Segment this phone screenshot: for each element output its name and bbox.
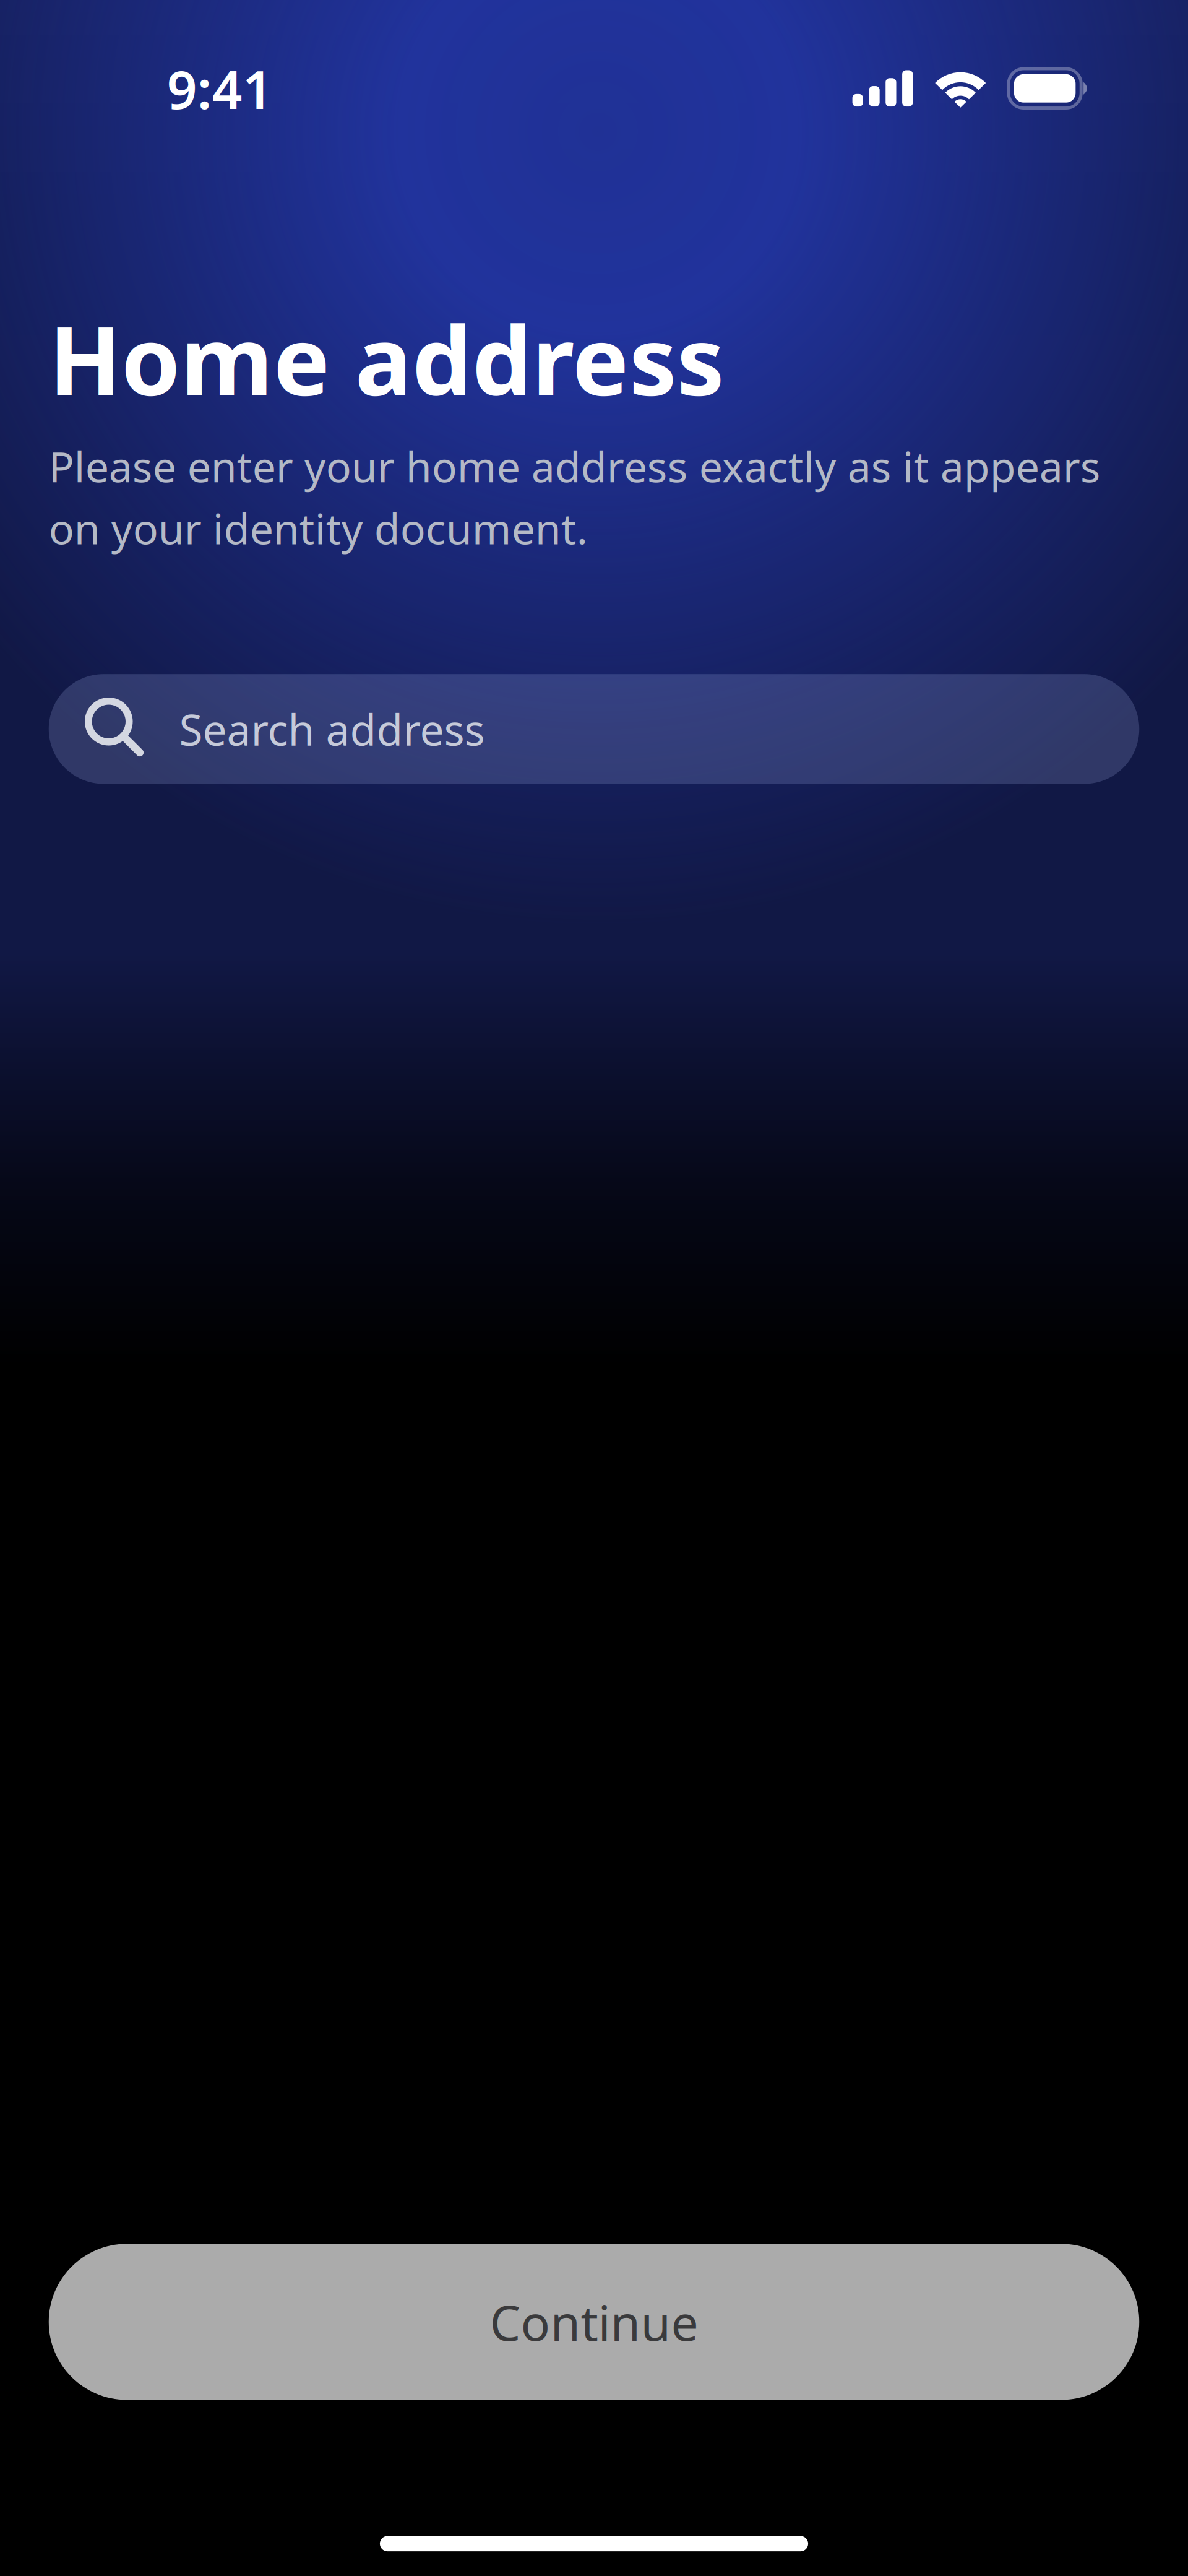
staticText: 9:41	[167, 53, 273, 123]
staticText: Continue	[490, 2290, 698, 2354]
staticText: Home address	[49, 295, 724, 421]
staticText: Search address	[179, 701, 485, 758]
button[interactable]: Continue	[49, 2244, 1139, 2400]
staticText: Please enter your home address exactly a…	[49, 438, 1101, 556]
button[interactable]: Search address	[49, 674, 1139, 784]
